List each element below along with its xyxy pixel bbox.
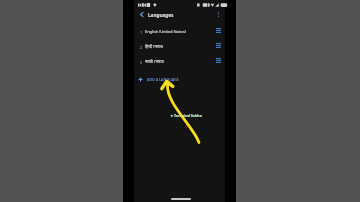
button[interactable]: 2 (134, 40, 225, 54)
button[interactable]: 1 (134, 25, 225, 39)
button[interactable]: 3 (134, 55, 225, 69)
staticText: 3 (140, 60, 143, 65)
staticText: Technical Sabha (174, 113, 202, 118)
staticText: मराठी (भारत) (145, 59, 164, 65)
other: Reorder (216, 28, 221, 33)
staticText: हिन्दी (भारत) (145, 44, 163, 50)
button[interactable]: ADD A LANGUAGE (134, 72, 225, 86)
other: Reorder (216, 58, 221, 63)
staticText: Languages (148, 12, 174, 18)
staticText: ADD A LANGUAGE (147, 77, 179, 82)
button[interactable]: Back (135, 8, 147, 20)
staticText: 1 (140, 30, 143, 35)
button[interactable]: More options (212, 8, 224, 20)
other: Reorder (216, 43, 221, 48)
staticText: English (United States) (145, 29, 186, 35)
staticText: 2 (140, 45, 143, 50)
